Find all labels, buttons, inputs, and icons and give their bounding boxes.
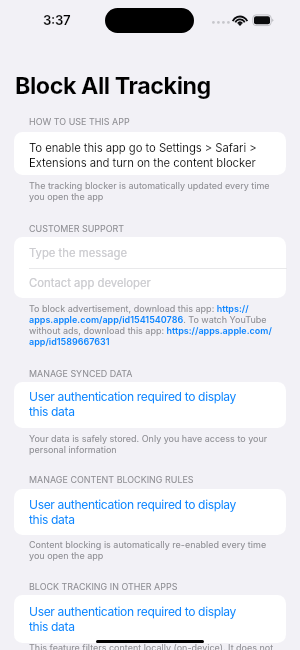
button[interactable]: Type the message bbox=[14, 237, 286, 268]
staticText: To block advertisement, download this ap… bbox=[29, 303, 281, 347]
staticText: BLOCK TRACKING IN OTHER APPS bbox=[29, 581, 286, 592]
staticText: Type the message bbox=[29, 246, 128, 260]
staticText: MANAGE SYNCED DATA bbox=[29, 368, 286, 379]
staticText: Your data is safely stored. Only you hav… bbox=[29, 433, 281, 455]
other: Status icons bbox=[210, 13, 276, 27]
button[interactable] bbox=[14, 132, 286, 175]
staticText: HOW TO USE THIS APP bbox=[29, 116, 286, 127]
staticText: The tracking blocker is automatically up… bbox=[29, 180, 281, 202]
staticText: 3:37 bbox=[43, 12, 71, 28]
staticText: Contact app developer bbox=[29, 276, 151, 290]
staticText: Block All Tracking bbox=[15, 71, 211, 99]
staticText: CUSTOMER SUPPORT bbox=[29, 223, 286, 234]
button[interactable] bbox=[14, 382, 286, 428]
staticText: MANAGE CONTENT BLOCKING RULES bbox=[29, 474, 286, 485]
staticText: Content blocking is automatically re-ena… bbox=[29, 539, 281, 561]
button[interactable] bbox=[14, 595, 286, 643]
staticText: User authentication required to display … bbox=[29, 604, 289, 634]
staticText: This feature filters content locally (on… bbox=[29, 642, 281, 650]
staticText: User authentication required to display … bbox=[29, 497, 289, 527]
button[interactable] bbox=[14, 489, 286, 535]
staticText: To enable this app go to Settings > Safa… bbox=[29, 141, 279, 169]
button[interactable]: Contact app developer bbox=[14, 268, 286, 298]
staticText: User authentication required to display … bbox=[29, 389, 289, 419]
